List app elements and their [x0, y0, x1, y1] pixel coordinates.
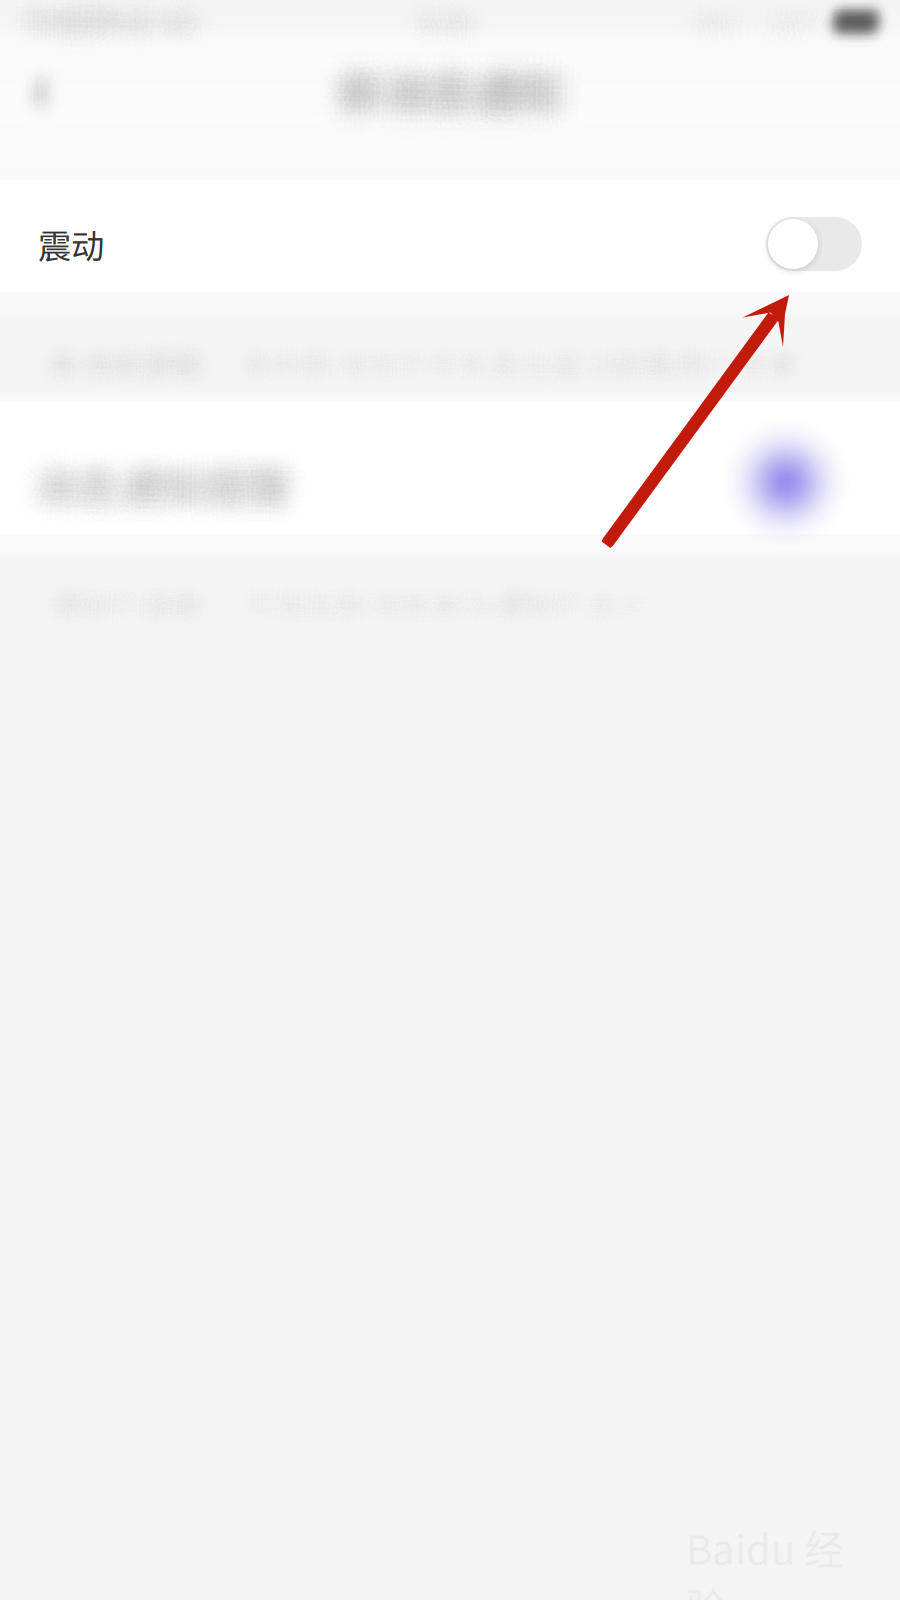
staticText: 9:41	[407, 7, 470, 53]
staticText: 9:41	[410, 0, 473, 44]
staticText: 中国移动 4G	[29, 0, 210, 31]
staticText: 消息通知提醒	[17, 435, 275, 497]
staticText: 新消息提醒	[48, 343, 203, 388]
staticText: WiFi 100%	[693, 0, 833, 28]
staticText: 新消息提醒	[41, 350, 196, 395]
staticText: 消息通知提醒	[16, 448, 274, 510]
staticText: 中国移动 4G	[12, 0, 193, 32]
staticText: 9:41	[414, 0, 477, 34]
staticText: 新消息提醒	[57, 343, 212, 388]
staticText: 通知栏提醒	[36, 584, 191, 628]
staticText: 9:41	[406, 4, 469, 51]
staticText: 中国移动 4G	[33, 0, 214, 23]
staticText: 新消息通知	[324, 74, 549, 140]
staticText: 消息通知提醒	[41, 466, 299, 528]
staticText: 中国移动 4G	[18, 0, 199, 45]
staticText: 中国移动 4G	[13, 0, 194, 47]
staticText: 9:41	[418, 13, 481, 59]
staticText: 中国移动 4G	[33, 0, 214, 48]
staticText: 消息通知提醒	[26, 437, 284, 498]
staticText: 中国移动 4G	[26, 0, 207, 37]
staticText: 新消息通知	[329, 46, 554, 112]
staticText: 收到新消息时手机发出震动提醒用户查看	[248, 331, 806, 376]
staticText: 收到新消息时手机发出震动提醒用户查看	[240, 326, 798, 370]
staticText: 9:41	[413, 1, 476, 47]
button[interactable]: 震动	[0, 183, 900, 305]
staticText: 消息通知提醒	[31, 466, 289, 528]
staticText: 中国移动 4G	[22, 21, 203, 69]
staticText: 消息通知提醒	[29, 451, 287, 513]
staticText: 中国移动 4G	[24, 4, 205, 52]
staticText: 通知栏提醒	[49, 577, 204, 622]
staticText: 9:41	[420, 0, 483, 39]
staticText: 新消息提醒	[58, 330, 213, 375]
staticText: 新消息通知	[331, 54, 556, 120]
staticText: 收到新消息时手机发出震动提醒用户查看	[247, 328, 805, 372]
staticText: 中国移动 4G	[11, 12, 192, 60]
staticText: 新消息通知	[343, 53, 568, 118]
staticText: 通知栏提醒	[61, 576, 216, 621]
staticText: 消息通知提醒	[48, 443, 306, 505]
staticText: 消息通知提醒	[28, 446, 286, 508]
staticText: 9:41	[414, 9, 477, 56]
staticText: WiFi 100%	[717, 13, 857, 56]
staticText: 通知栏提醒	[49, 575, 204, 620]
staticText: WiFi 100%	[679, 4, 819, 46]
staticText: 新消息提醒	[55, 328, 210, 372]
staticText: 收到新消息时手机发出震动提醒用户查看	[251, 330, 809, 375]
staticText: 新消息通知	[334, 59, 559, 124]
staticText: 9:41	[408, 21, 471, 67]
staticText: 中国移动 4G	[41, 0, 222, 41]
staticText: 新消息通知	[365, 72, 590, 138]
staticText: 9:41	[426, 7, 489, 53]
staticText: 消息通知提醒	[50, 458, 308, 520]
staticText: 消息通知提醒	[7, 452, 265, 514]
staticText: 消息通知提醒	[45, 450, 303, 512]
staticText: 新消息通知	[343, 56, 568, 122]
staticText: 9:41	[413, 0, 476, 38]
staticText: 消息通知提醒	[32, 461, 290, 523]
staticText: 新消息通知	[345, 66, 570, 132]
staticText: 9:41	[429, 0, 492, 36]
staticText: 9:41	[411, 0, 474, 44]
staticText: 通知栏提醒	[44, 580, 199, 624]
staticText: 新消息通知	[350, 63, 575, 129]
staticText: 9:41	[423, 1, 486, 48]
staticText: 新消息提醒	[53, 339, 208, 383]
staticText: 消息通知提醒	[45, 462, 303, 524]
staticText: 通知栏提醒	[52, 582, 207, 627]
staticText: WiFi 100%	[713, 0, 853, 24]
staticText: 消息通知提醒	[14, 454, 272, 516]
staticText: 收到新消息时手机发出震动提醒用户查看	[249, 336, 807, 380]
staticText: WiFi 100%	[700, 0, 840, 30]
staticText: 9:41	[420, 7, 483, 54]
staticText: WiFi 100%	[696, 3, 836, 45]
staticText: 新消息提醒	[42, 344, 197, 388]
staticText: 新消息提醒	[48, 330, 203, 375]
staticText: 新消息提醒	[51, 334, 206, 378]
staticText: 新消息提醒	[37, 349, 192, 394]
staticText: 收到新消息时手机发出震动提醒用户查看	[241, 339, 799, 383]
staticText: WiFi 100%	[693, 13, 833, 56]
staticText: 收到新消息时手机发出震动提醒用户查看	[238, 332, 796, 376]
staticText: 收到新消息时手机发出震动提醒用户查看	[238, 341, 796, 385]
staticText: 新消息提醒	[41, 338, 196, 382]
staticText: 新消息提醒	[44, 330, 199, 374]
staticText: 新消息通知	[323, 42, 548, 107]
staticText: 中国移动 4G	[23, 0, 204, 48]
staticText: 消息通知提醒	[45, 458, 303, 520]
staticText: 新消息通知	[329, 83, 554, 149]
staticText: 新消息提醒	[55, 345, 210, 389]
staticText: 通知栏提醒	[52, 584, 207, 629]
staticText: 中国移动 4G	[21, 0, 202, 46]
staticText: 新消息提醒	[52, 357, 207, 402]
